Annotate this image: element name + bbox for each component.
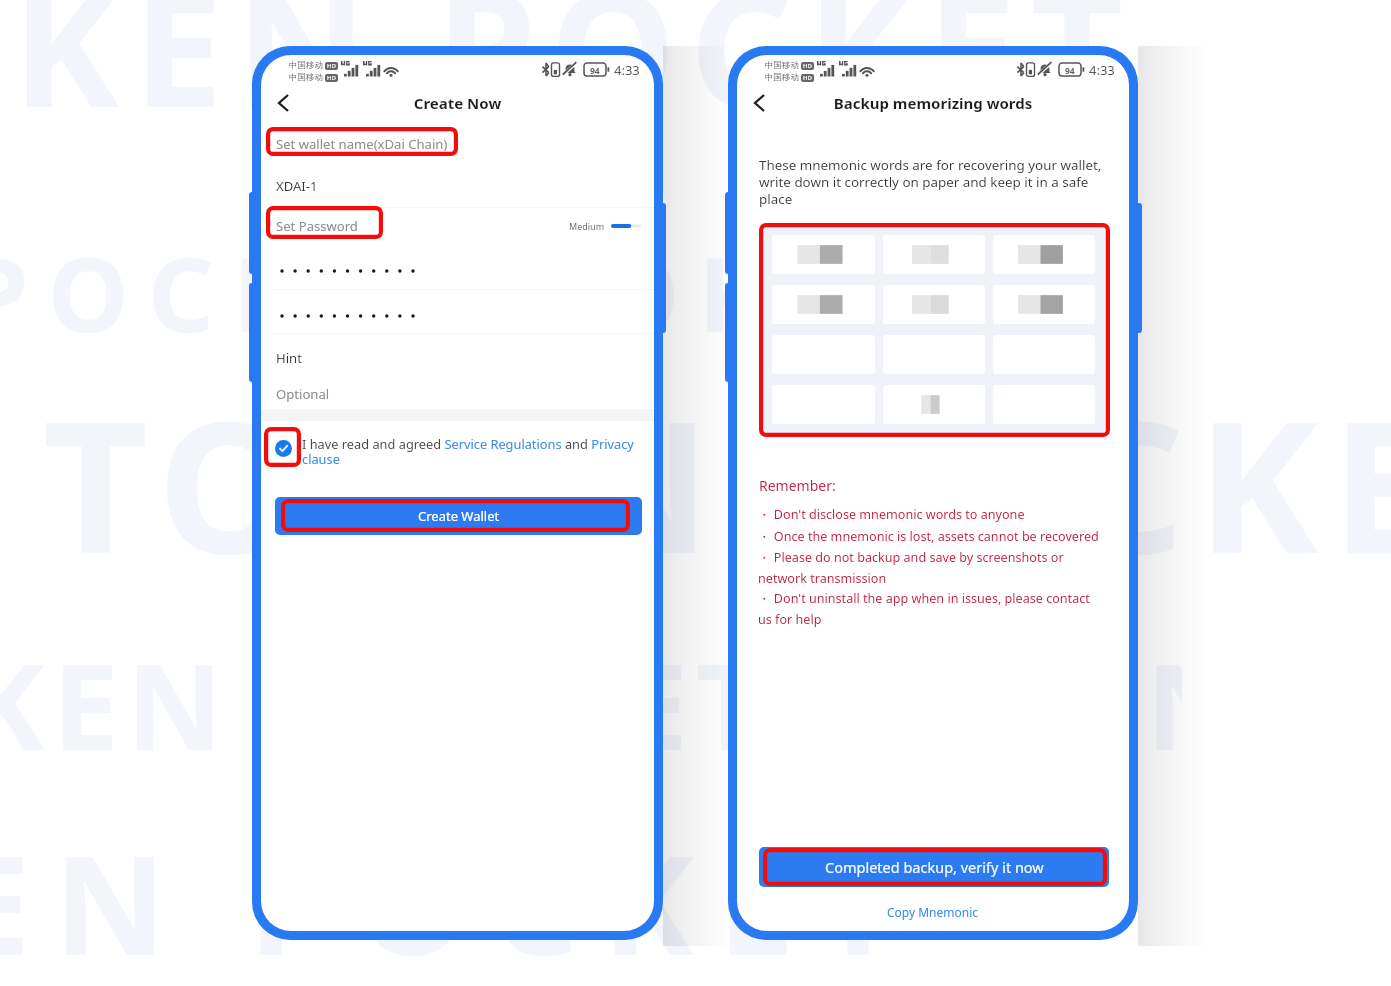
staticText: Create Wallet [418, 507, 500, 525]
button[interactable] [772, 285, 875, 324]
staticText: Backup memorizing words [737, 93, 1129, 113]
staticText: Remember: [759, 476, 836, 495]
button[interactable] [993, 285, 1095, 324]
staticText: Copy Mnemonic [887, 904, 979, 920]
staticText: I have read and agreed Service Regulatio… [302, 435, 638, 468]
button[interactable]: Create Wallet [275, 497, 642, 535]
staticText: 中国移动 [765, 60, 799, 71]
button[interactable] [883, 285, 985, 324]
button[interactable] [993, 235, 1095, 274]
staticText: TOKEN POCKET TOKEN POCKET TOKEN POCKET [43, 358, 1391, 606]
button[interactable]: Back [744, 88, 774, 118]
staticText: 中国移动 [765, 72, 799, 83]
staticText: 4:33 [1089, 61, 1115, 79]
button[interactable] [772, 235, 875, 274]
staticText: Hint [276, 349, 302, 367]
staticText: ・ Don't disclose mnemonic words to anyon… [758, 506, 1099, 627]
button[interactable] [883, 235, 985, 274]
staticText: 中国移动 [289, 60, 323, 71]
staticText: Set wallet name(xDai Chain) [276, 135, 448, 153]
staticText: 94 [590, 65, 600, 77]
staticText: TOKEN POCKET TOKEN POCKET TOKEN POCKET [0, 624, 1182, 785]
staticText: Completed backup, verify it now [825, 857, 1044, 877]
staticText: TOKEN POCKET TOKEN POCKET TOKEN POCKET [0, 0, 1160, 154]
staticText: 中国移动 [289, 72, 323, 83]
button[interactable]: I have read and agreed Service Regulatio… [302, 435, 638, 468]
staticText: HD [327, 62, 336, 70]
staticText: Set Password [276, 217, 358, 235]
button[interactable] [883, 385, 985, 424]
button[interactable]: Copy Mnemonic [883, 900, 983, 924]
staticText: TOKEN POCKET TOKEN POCKET TOKEN POCKET [0, 222, 866, 362]
button[interactable]: Completed backup, verify it now [759, 847, 1109, 887]
staticText: HD [803, 62, 812, 70]
staticText: Medium [569, 220, 605, 232]
button[interactable]: Back [268, 88, 298, 118]
staticText: Optional [276, 385, 330, 403]
staticText: 4:33 [614, 61, 640, 79]
staticText: 94 [1065, 65, 1075, 77]
staticText: HD [803, 74, 812, 82]
staticText: Create Now [261, 93, 654, 113]
staticText: These mnemonic words are for recovering … [759, 156, 1107, 208]
staticText: TOKEN POCKET TOKEN POCKET TOKEN POCKET [0, 809, 997, 986]
staticText: XDAI-1 [276, 177, 318, 195]
staticText: HD [327, 74, 336, 82]
button[interactable]: Agree to terms [275, 440, 292, 457]
